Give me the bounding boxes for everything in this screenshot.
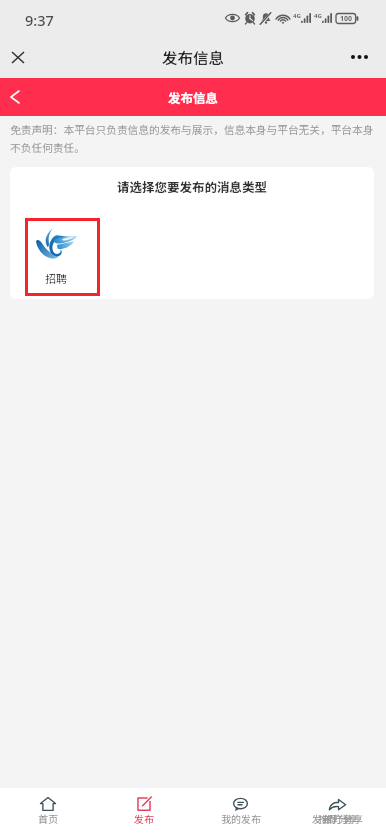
- button[interactable]: 我的发布: [192, 788, 289, 833]
- button[interactable]: 招聘: [25, 218, 100, 296]
- button[interactable]: Close: [0, 36, 36, 78]
- staticText: 4G: [293, 12, 301, 20]
- staticText: 首页: [38, 811, 58, 825]
- staticText: 推荐分享: [318, 811, 358, 825]
- staticText: 9:37: [25, 10, 54, 30]
- staticText: 推广分享: [323, 811, 363, 825]
- button[interactable]: 首页: [0, 788, 96, 833]
- button[interactable]: 发布: [96, 788, 192, 833]
- staticText: 招聘: [45, 270, 67, 286]
- staticText: 4G: [314, 12, 322, 20]
- staticText: 我的发布: [221, 811, 261, 825]
- staticText: 免责声明：本平台只负责信息的发布与展示，信息本身与平台无关，平台本身不负任何责任…: [10, 122, 376, 156]
- staticText: 发布: [134, 811, 154, 825]
- button[interactable]: Back: [0, 78, 29, 116]
- staticText: 100: [340, 14, 353, 24]
- staticText: 发布信息: [162, 46, 225, 68]
- button[interactable]: 推荐分享: [289, 788, 386, 833]
- staticText: 发布信息: [168, 88, 219, 106]
- button[interactable]: More options: [339, 36, 379, 78]
- staticText: 请选择您要发布的消息类型: [10, 177, 374, 195]
- staticText: 发布分享: [312, 811, 352, 825]
